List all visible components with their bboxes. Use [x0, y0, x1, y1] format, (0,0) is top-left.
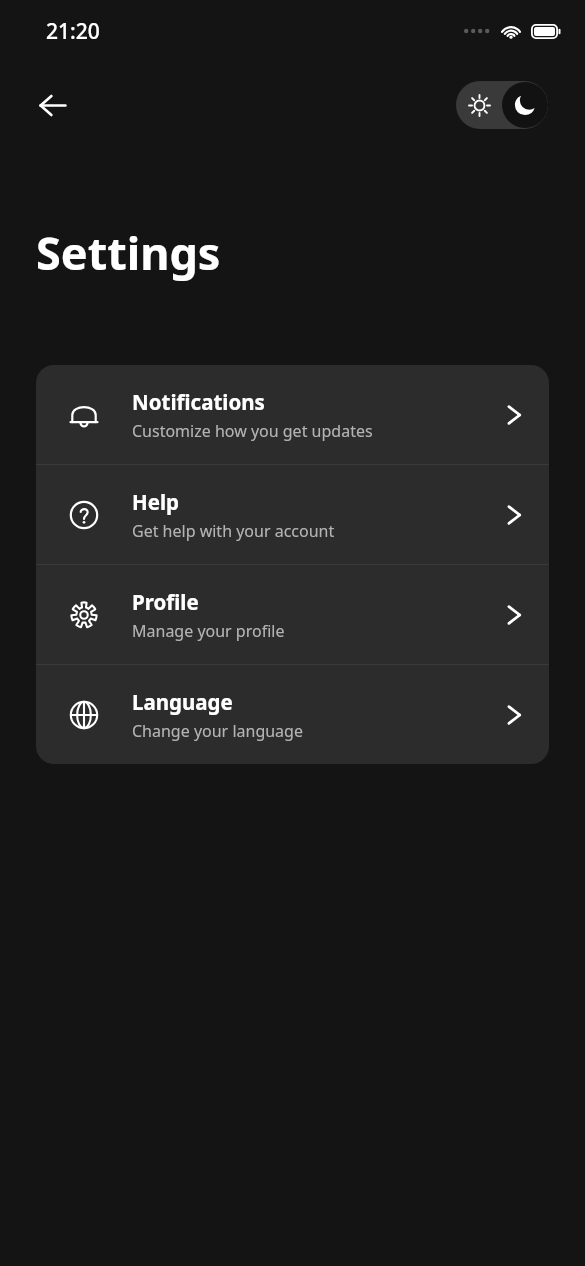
button[interactable]: Back: [26, 79, 78, 131]
button[interactable]: Toggle dark mode: [456, 81, 548, 129]
staticText: Profile: [132, 588, 199, 616]
staticText: Help: [132, 488, 179, 516]
staticText: Change your language: [132, 720, 303, 742]
staticText: Notifications: [132, 388, 265, 416]
button[interactable]: Notifications: [36, 365, 549, 464]
staticText: Manage your profile: [132, 620, 285, 642]
staticText: Language: [132, 688, 233, 716]
staticText: Settings: [36, 222, 221, 283]
button[interactable]: Profile: [36, 565, 549, 664]
staticText: Get help with your account: [132, 520, 335, 542]
staticText: Customize how you get updates: [132, 420, 373, 442]
button[interactable]: Help: [36, 465, 549, 564]
button[interactable]: Language: [36, 665, 549, 764]
staticText: 21:20: [46, 17, 100, 46]
